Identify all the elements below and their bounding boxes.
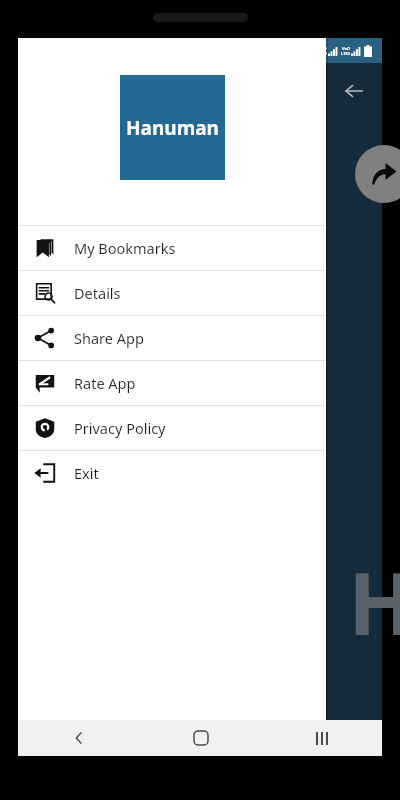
button[interactable]: Share App [18,316,326,360]
staticText: Rate App [74,373,136,393]
staticText: My Bookmarks [74,238,176,258]
staticText: LTE2 [341,51,350,56]
button[interactable]: Home [140,720,261,756]
button[interactable]: Details [18,271,326,315]
button[interactable]: Recent apps [261,720,382,756]
staticText: Share App [74,328,144,348]
button[interactable]: Privacy Policy [18,406,326,450]
staticText: Privacy Policy [74,418,166,438]
staticText: Details [74,283,121,303]
button[interactable]: Exit [18,451,326,495]
staticText: VoD [342,46,350,51]
button[interactable]: Rate App [18,361,326,405]
staticText: Hanuman [126,115,219,141]
button[interactable]: Back [18,720,140,756]
staticText: H [348,543,400,660]
button[interactable]: Share [355,145,400,203]
staticText: LTE1 [318,51,327,56]
staticText: VoD [319,46,327,51]
button[interactable]: My Bookmarks [18,226,326,270]
button[interactable]: Back [334,71,374,111]
staticText: Exit [74,463,99,483]
